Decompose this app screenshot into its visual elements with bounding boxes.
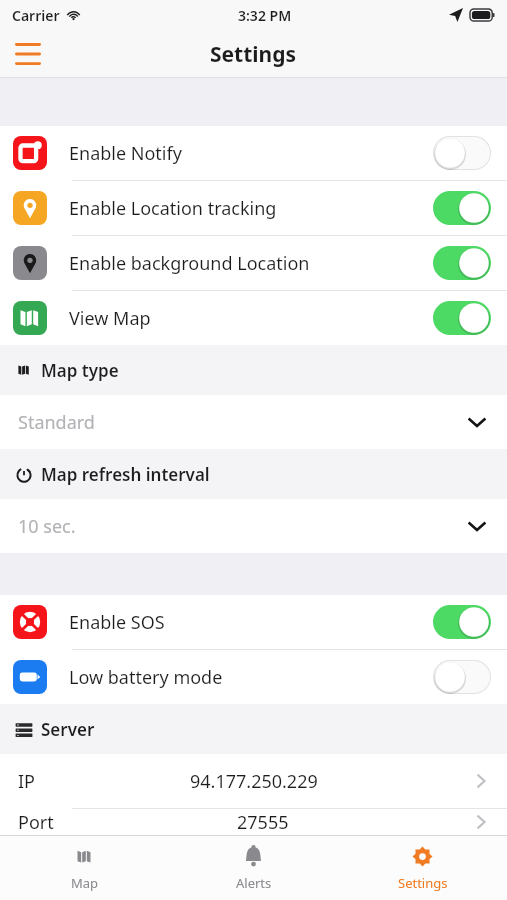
staticText: Enable Location tracking xyxy=(69,196,277,221)
button[interactable]: Toggle xyxy=(433,246,491,280)
button[interactable]: Enable background Location xyxy=(0,236,507,290)
staticText: IP xyxy=(18,769,35,794)
staticText: Map type xyxy=(41,359,119,382)
button[interactable]: Toggle xyxy=(433,136,491,170)
staticText: Enable Notify xyxy=(69,141,182,166)
button[interactable]: Settings xyxy=(338,836,507,900)
button[interactable]: 10 sec. xyxy=(0,499,507,553)
staticText: 94.177.250.229 xyxy=(190,769,318,794)
staticText: 27555 xyxy=(237,810,289,835)
staticText: Server xyxy=(41,718,95,741)
staticText: Alerts xyxy=(236,874,272,892)
staticText: 3:32 PM xyxy=(238,6,292,25)
button[interactable]: Enable Notify xyxy=(0,126,507,180)
button[interactable]: Toggle xyxy=(433,191,491,225)
staticText: Carrier xyxy=(12,6,60,25)
button[interactable]: IP xyxy=(0,754,507,808)
staticText: Map xyxy=(71,874,99,892)
button[interactable]: Map xyxy=(0,836,169,900)
button[interactable]: Menu xyxy=(8,34,48,74)
button[interactable]: Port xyxy=(0,809,507,835)
button[interactable]: View Map xyxy=(0,291,507,345)
staticText: Standard xyxy=(18,410,95,435)
button[interactable]: Enable SOS xyxy=(0,595,507,649)
staticText: Enable SOS xyxy=(69,610,165,635)
button[interactable]: Alerts xyxy=(169,836,338,900)
staticText: Port xyxy=(18,810,54,835)
button[interactable]: Toggle xyxy=(433,660,491,694)
button[interactable]: Toggle xyxy=(433,605,491,639)
staticText: Enable background Location xyxy=(69,251,310,276)
button[interactable]: Enable Location tracking xyxy=(0,181,507,235)
button[interactable]: Toggle xyxy=(433,301,491,335)
staticText: Settings xyxy=(398,874,448,892)
button[interactable]: Standard xyxy=(0,395,507,449)
staticText: Map refresh interval xyxy=(41,463,210,486)
staticText: 10 sec. xyxy=(18,514,76,539)
button[interactable]: Low battery mode xyxy=(0,650,507,704)
staticText: Settings xyxy=(210,40,297,69)
staticText: View Map xyxy=(69,306,151,331)
staticText: Low battery mode xyxy=(69,665,223,690)
